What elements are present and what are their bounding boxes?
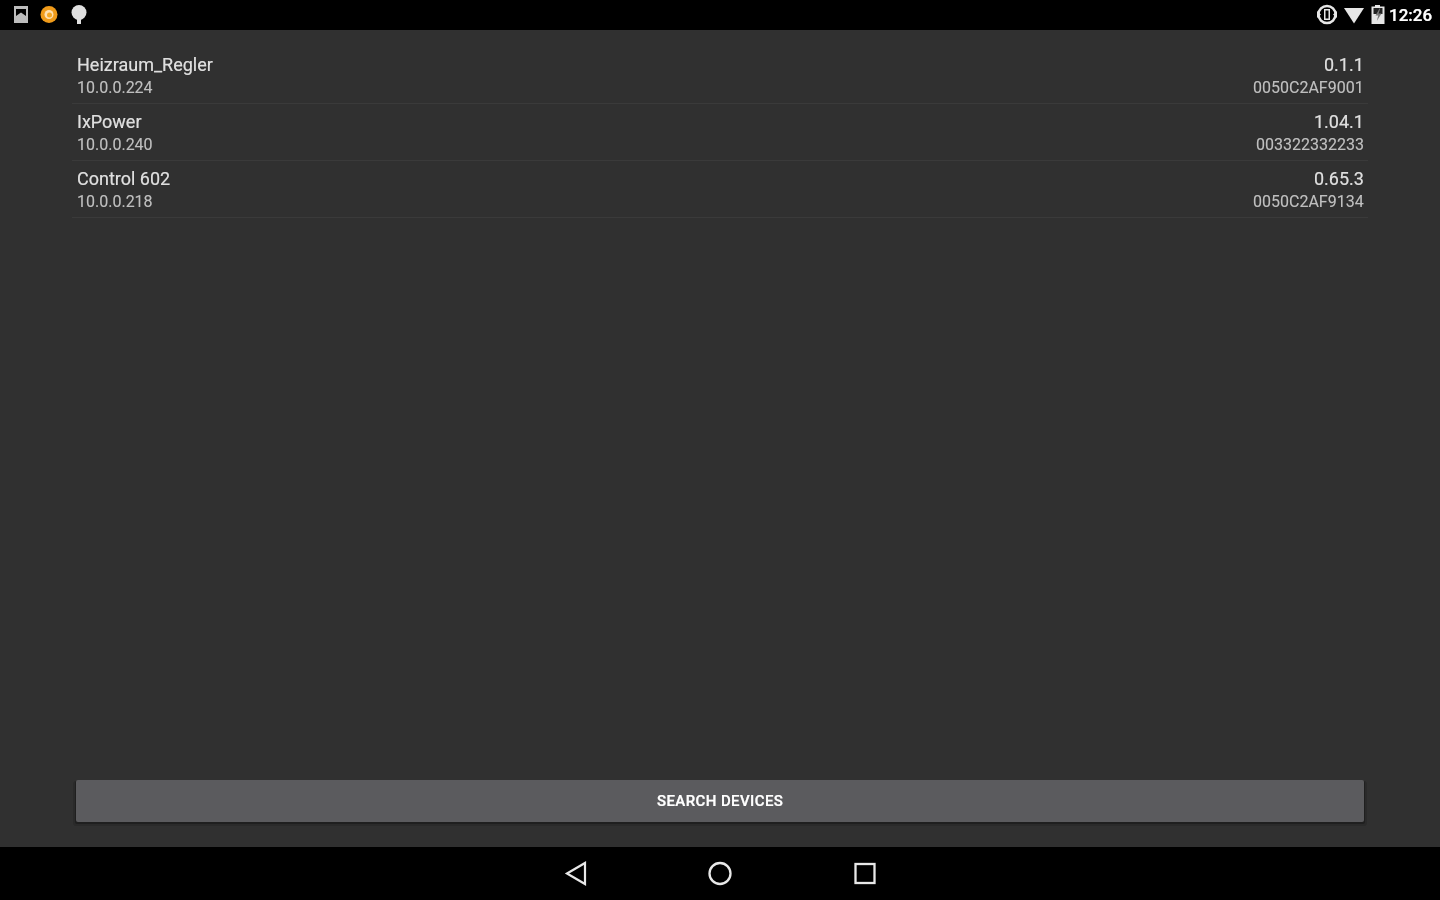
staticText: 0050C2AF9001	[1253, 78, 1364, 97]
staticText: 0.65.3	[1314, 168, 1364, 189]
staticText: 0.1.1	[1324, 54, 1364, 75]
button[interactable]: Recent apps	[832, 847, 898, 900]
staticText: 10.0.0.240	[77, 135, 153, 154]
button[interactable]: SEARCH DEVICES	[76, 780, 1364, 822]
staticText: 10.0.0.218	[77, 192, 153, 211]
staticText: 12:26	[1389, 5, 1433, 25]
button[interactable]: IxPower	[0, 104, 1440, 161]
button[interactable]: Home	[687, 847, 753, 900]
staticText: IxPower	[77, 111, 142, 132]
staticText: 1.04.1	[1314, 111, 1364, 132]
staticText: Control 602	[77, 168, 171, 189]
staticText: 10.0.0.224	[77, 78, 153, 97]
button[interactable]: Control 602	[0, 161, 1440, 218]
staticText: SEARCH DEVICES	[657, 792, 784, 810]
button[interactable]: Heizraum_Regler	[0, 47, 1440, 104]
staticText: 003322332233	[1256, 135, 1364, 154]
button[interactable]: Back	[544, 847, 610, 900]
staticText: Heizraum_Regler	[77, 54, 213, 75]
staticText: 0050C2AF9134	[1253, 192, 1364, 211]
